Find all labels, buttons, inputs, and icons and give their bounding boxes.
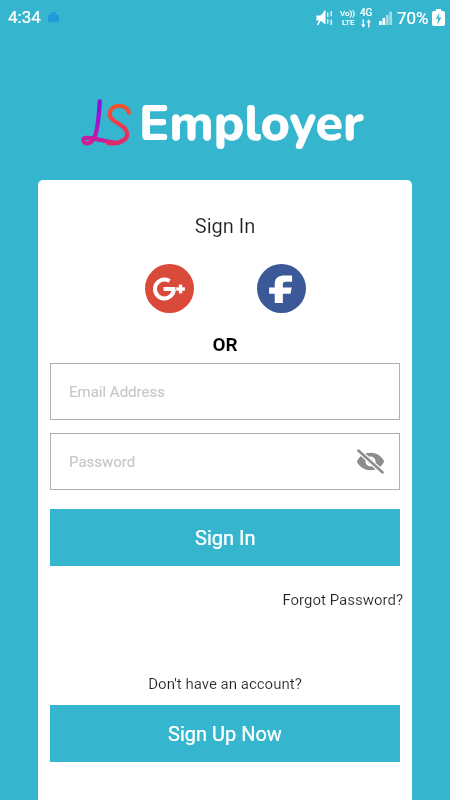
staticText: Sign Up Now [168, 722, 282, 745]
button[interactable]: Email Address [50, 363, 400, 420]
staticText: Employer [139, 89, 364, 153]
staticText: Password [69, 453, 136, 471]
staticText: Sign In [38, 214, 412, 237]
button[interactable]: Forgot Password? [38, 591, 403, 609]
staticText: Vo)) [340, 9, 356, 18]
staticText: OR [38, 333, 412, 355]
staticText: Don't have an account? [38, 675, 412, 693]
button[interactable]: Sign in with Facebook [257, 264, 306, 313]
button[interactable]: Sign in with Google [145, 264, 194, 313]
staticText: Email Address [69, 383, 165, 401]
staticText: Sign In [195, 526, 256, 549]
button[interactable]: Show password [356, 447, 385, 476]
staticText: LTE [342, 18, 355, 27]
staticText: 4G [360, 7, 373, 19]
button[interactable]: Sign Up Now [50, 705, 400, 762]
button[interactable]: Password [50, 433, 400, 490]
staticText: 4:34 [8, 7, 41, 27]
button[interactable]: Sign In [50, 509, 400, 566]
staticText: 70% [397, 8, 429, 28]
